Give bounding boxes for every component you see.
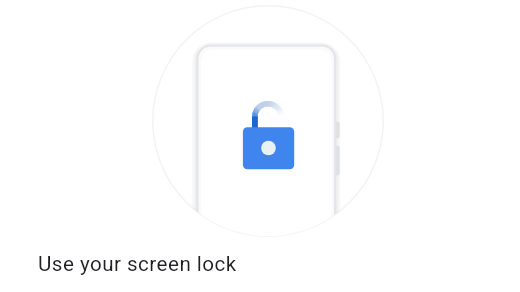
staticText: Use your screen lock xyxy=(38,252,237,276)
other: Screen lock illustration xyxy=(152,5,384,237)
